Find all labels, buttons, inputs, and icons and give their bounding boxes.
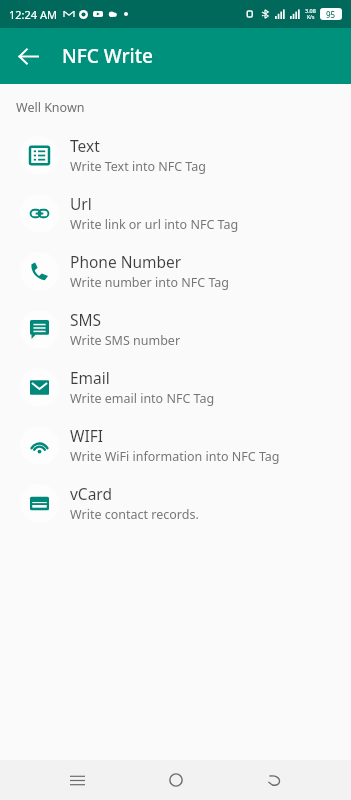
button[interactable]: Recent apps — [55, 760, 99, 800]
staticText: SMS — [70, 309, 102, 330]
staticText: Url — [70, 193, 92, 214]
staticText: Write WiFi information into NFC Tag — [70, 448, 280, 465]
staticText: Well Known — [16, 99, 85, 116]
staticText: vCard — [70, 483, 112, 504]
staticText: Write email into NFC Tag — [70, 390, 215, 407]
button[interactable]: Url — [0, 184, 351, 242]
staticText: 3.08 — [305, 7, 316, 14]
staticText: Phone Number — [70, 251, 182, 272]
staticText: Text — [70, 135, 100, 156]
button[interactable]: SMS — [0, 300, 351, 358]
staticText: Write link or url into NFC Tag — [70, 216, 239, 233]
button[interactable]: Home — [154, 760, 198, 800]
staticText: Write SMS number — [70, 332, 181, 349]
button[interactable]: Back — [8, 36, 48, 76]
staticText: Write contact records. — [70, 506, 199, 523]
staticText: NFC Write — [62, 43, 153, 69]
staticText: Email — [70, 367, 110, 388]
staticText: K/s — [307, 14, 315, 21]
button[interactable]: WIFI — [0, 416, 351, 474]
staticText: Write Text into NFC Tag — [70, 158, 207, 175]
button[interactable]: vCard — [0, 474, 351, 532]
button[interactable]: Email — [0, 358, 351, 416]
button[interactable]: Phone Number — [0, 242, 351, 300]
staticText: WIFI — [70, 425, 103, 446]
staticText: 95 — [326, 9, 336, 20]
staticText: Write number into NFC Tag — [70, 274, 230, 291]
button[interactable]: Back — [252, 760, 296, 800]
staticText: 12:24 AM — [9, 7, 57, 22]
button[interactable]: Text — [0, 126, 351, 184]
